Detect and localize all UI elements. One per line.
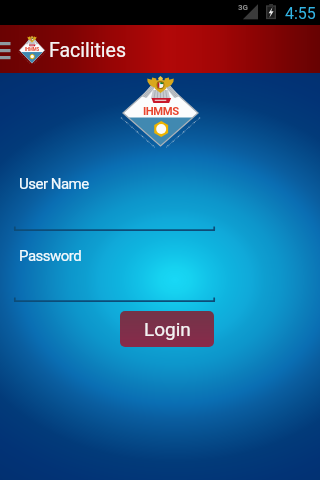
staticText: 3G: [238, 3, 249, 12]
staticText: Password: [19, 247, 82, 265]
staticText: Login: [144, 318, 191, 340]
staticText: Facilities: [49, 39, 127, 62]
staticText: IHMMS: [143, 105, 179, 118]
staticText: User Name: [19, 175, 89, 193]
button[interactable]: Open navigation menu: [0, 25, 15, 73]
staticText: 4:55: [285, 4, 316, 23]
staticText: IHMMS: [25, 47, 39, 52]
button[interactable]: Login: [120, 311, 214, 347]
